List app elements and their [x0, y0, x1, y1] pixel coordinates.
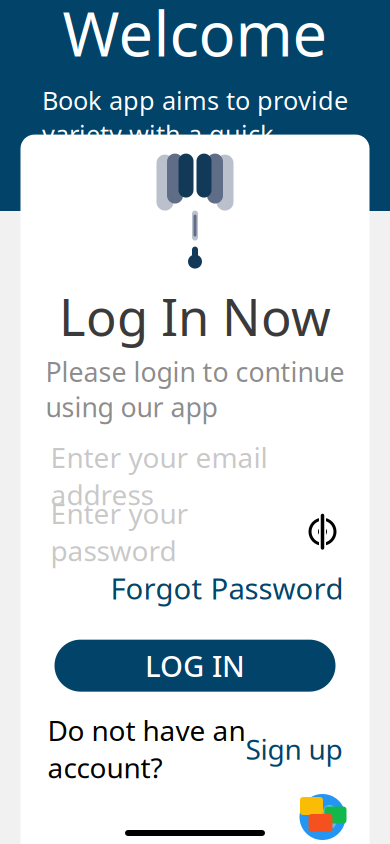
button[interactable]: Forgot Password [106, 563, 347, 614]
button[interactable]: Enter your password [20, 505, 369, 559]
button[interactable]: Do not have an account? [47, 708, 342, 790]
staticText: Enter your email address [50, 438, 267, 513]
staticText: Book app aims to provide variety with a … [42, 83, 348, 151]
staticText: Log In Now [59, 283, 331, 350]
staticText: Forgot Password [110, 569, 343, 608]
staticText: Please login to continue using our app [45, 354, 344, 425]
staticText: Welcome [62, 0, 327, 73]
staticText: Enter your password [50, 494, 188, 569]
button[interactable]: Change language, English [297, 792, 347, 844]
staticText: LOG IN [145, 646, 245, 685]
staticText: sharing of resources among friends and f… [27, 153, 363, 220]
button[interactable]: Enter your email address [20, 449, 369, 503]
staticText: Do not have an account? [47, 712, 245, 786]
staticText: Sign up [245, 730, 342, 767]
button[interactable]: LOG IN [54, 640, 335, 692]
